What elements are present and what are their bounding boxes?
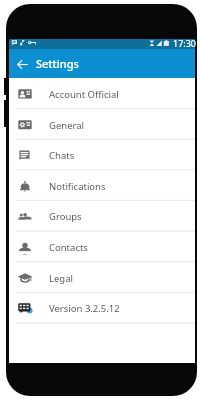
staticText: Settings [36, 56, 79, 71]
staticText: Chats [49, 149, 75, 162]
staticText: General [49, 119, 85, 132]
staticText: Account Official [49, 88, 119, 101]
staticText: 17:30 [173, 37, 197, 47]
button[interactable]: Back [13, 55, 31, 73]
staticText: Notifications [49, 180, 106, 193]
button[interactable]: Account Official [9, 78, 195, 109]
button[interactable]: Legal [9, 262, 195, 293]
staticText: Groups [49, 210, 82, 223]
button[interactable]: Groups [9, 200, 195, 231]
staticText: Legal [49, 272, 73, 285]
button[interactable]: Version 3.2.5.12 [9, 292, 195, 323]
button[interactable]: Notifications [9, 170, 195, 201]
staticText: Version 3.2.5.12 [49, 302, 120, 315]
button[interactable]: General [9, 109, 195, 140]
button[interactable]: Chats [9, 139, 195, 170]
button[interactable]: Contacts [9, 231, 195, 262]
staticText: Contacts [49, 241, 88, 254]
